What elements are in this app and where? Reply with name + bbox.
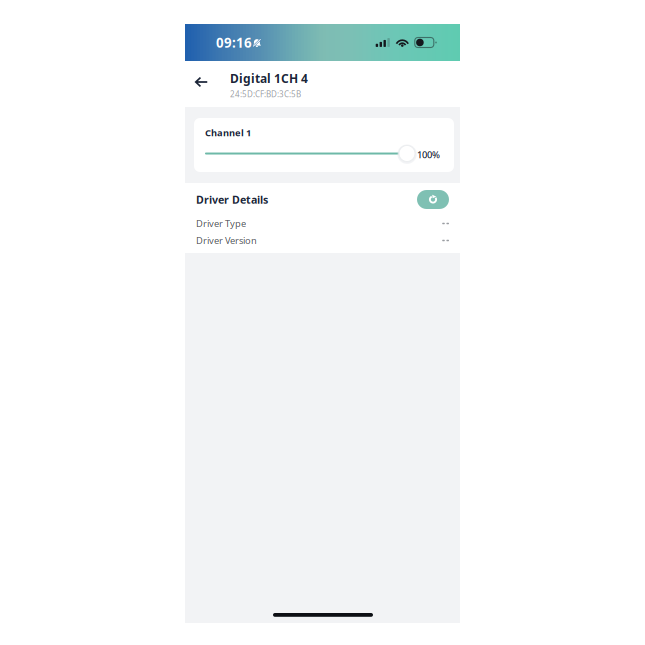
button[interactable]: Back — [186, 67, 216, 97]
staticText: Driver Details — [196, 192, 268, 207]
staticText: Digital 1CH 4 — [230, 70, 308, 86]
staticText: Channel 1 — [205, 126, 251, 139]
staticText: 100% — [417, 148, 440, 161]
button[interactable]: Refresh — [417, 190, 449, 209]
staticText: Driver Version — [196, 234, 257, 247]
staticText: 09:16 — [216, 34, 252, 51]
staticText: Driver Type — [196, 217, 246, 230]
staticText: 24:5D:CF:BD:3C:5B — [230, 89, 301, 99]
